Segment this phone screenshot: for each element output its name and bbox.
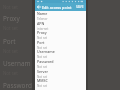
- button[interactable]: APN: [35, 21, 86, 31]
- staticText: Not set: [37, 46, 48, 50]
- staticText: internet: [37, 27, 49, 31]
- staticText: Password: [3, 81, 32, 90]
- button[interactable]: Port: [35, 40, 86, 50]
- staticText: Not set: [37, 55, 48, 59]
- button[interactable]: Username: [0, 59, 34, 81]
- staticText: Not set: [37, 65, 48, 69]
- button[interactable]: Proxy: [35, 30, 86, 40]
- staticText: Name: [37, 11, 48, 16]
- button[interactable]: Password: [0, 81, 34, 90]
- staticText: Not set: [37, 75, 48, 79]
- button[interactable]: Proxy: [0, 14, 34, 36]
- button[interactable]: Port: [0, 37, 34, 59]
- staticText: Not set: [37, 36, 48, 40]
- staticText: Port: [3, 37, 16, 46]
- staticText: Edit access point: [42, 5, 72, 10]
- button[interactable]: Username: [35, 49, 86, 59]
- staticText: Port: [37, 40, 45, 45]
- staticText: Telenor: [37, 17, 48, 21]
- staticText: Proxy: [37, 30, 47, 35]
- button[interactable]: Password: [35, 59, 86, 69]
- button[interactable]: SAVE: [75, 3, 84, 11]
- button[interactable]: MMSC: [35, 78, 86, 88]
- staticText: MMSC: [37, 78, 48, 83]
- staticText: Password: [37, 59, 54, 64]
- staticText: Proxy: [3, 14, 20, 23]
- staticText: Username: [37, 49, 55, 54]
- button[interactable]: Back: [35, 3, 42, 11]
- staticText: APN: [37, 21, 45, 26]
- button[interactable]: Not set: [0, 0, 34, 17]
- staticText: SAVE: [76, 5, 84, 9]
- button[interactable]: Name: [35, 11, 86, 21]
- button[interactable]: Server: [35, 69, 86, 79]
- staticText: Not set: [37, 84, 48, 88]
- staticText: Server: [37, 69, 49, 74]
- staticText: Username: [3, 59, 34, 68]
